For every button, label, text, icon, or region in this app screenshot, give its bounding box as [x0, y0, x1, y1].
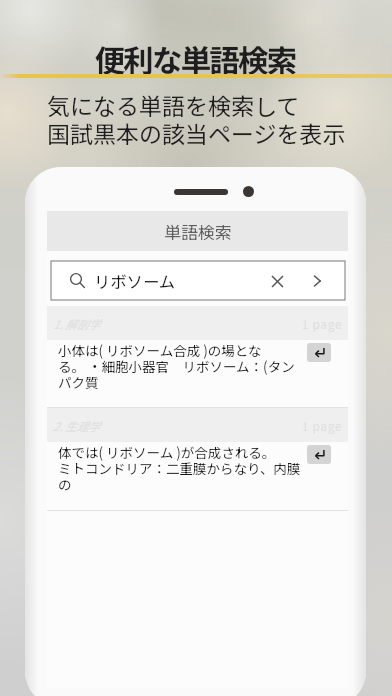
staticText: 1 page [302, 316, 343, 333]
button[interactable]: 体では( リボソーム )が合成される。 ミトコンドリア：二重膜からなり、内膜 の [47, 442, 348, 510]
staticText: 便利な単語検索 [0, 37, 391, 81]
staticText: 単語検索 [164, 219, 232, 244]
staticText: 体では( リボソーム )が合成される。 ミトコンドリア：二重膜からなり、内膜 の [58, 442, 301, 494]
staticText: 1. 解剖学 [53, 316, 100, 333]
button[interactable]: リボソーム [51, 261, 345, 300]
staticText: 気になる単語を検索して 国試黒本の該当ページを表示 [47, 88, 346, 149]
button[interactable]: 単語検索 [47, 211, 348, 251]
staticText: 1 page [302, 418, 343, 435]
button[interactable]: 小体は( リボソーム合成 )の場とな る。 ・細胞小器官 リボソーム：(タン パ… [47, 340, 348, 407]
button[interactable]: Search [304, 267, 332, 295]
staticText: 2. 生理学 [53, 418, 100, 435]
staticText: リボソーム [94, 269, 175, 293]
staticText: 小体は( リボソーム合成 )の場とな る。 ・細胞小器官 リボソーム：(タン パ… [58, 340, 295, 392]
button[interactable]: Open page [307, 445, 331, 464]
button[interactable]: Clear [263, 267, 291, 295]
button[interactable]: Open page [307, 343, 331, 362]
